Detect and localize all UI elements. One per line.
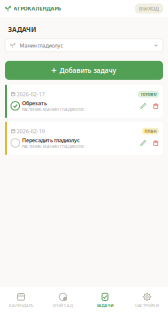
staticText: ГОТОВО [140, 91, 156, 97]
staticText: ЗАДАЧИ [96, 303, 113, 308]
button[interactable]: ЗАДАЧИ [84, 287, 126, 314]
staticText: Добавить задачу [59, 66, 116, 75]
staticText: НАСТРОЙКИ [135, 303, 159, 308]
button[interactable]: НАСТРОЙКИ [126, 287, 168, 314]
button[interactable]: 2026-02-17 [5, 85, 163, 118]
staticText: КАЛЕНДАРЬ [9, 303, 33, 308]
button[interactable]: ВЫХОД [135, 3, 163, 14]
button[interactable]: КАЛЕНДАРЬ [0, 287, 42, 314]
button[interactable]: 2026-02-19 [5, 122, 163, 155]
staticText: Пересадить гладиолус [22, 137, 80, 144]
staticText: РАСТЕНИЕ: МАНИН ГЛАДИОЛУС [22, 144, 85, 149]
button[interactable]: Добавить задачу [5, 61, 163, 80]
button[interactable]: Манин гладиолус [5, 39, 163, 52]
staticText: 2026-02-19 [17, 128, 45, 135]
staticText: МОЙ САД [53, 303, 73, 308]
staticText: РАСТЕНИЕ: МАНИН ГЛАДИОЛУС [22, 107, 85, 112]
staticText: Обрезать [22, 100, 47, 107]
staticText: АГРОКАЛЕНДАРЬ [13, 5, 60, 12]
button[interactable]: МОЙ САД [42, 287, 84, 314]
staticText: 2026-02-17 [17, 91, 45, 98]
staticText: Манин гладиолус [19, 42, 63, 49]
staticText: ПЛАН [144, 128, 156, 134]
staticText: ЗАДАЧИ [8, 25, 36, 34]
staticText: ВЫХОД [139, 5, 159, 12]
